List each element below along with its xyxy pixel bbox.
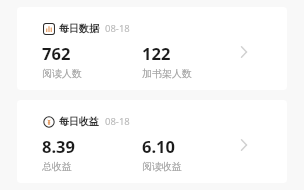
staticText: 阅读人数: [42, 67, 82, 80]
button[interactable]: More: [236, 137, 252, 153]
staticText: 每日数据: [59, 22, 99, 35]
button[interactable]: 每日收益: [17, 100, 287, 183]
staticText: 6.10: [142, 135, 175, 157]
button[interactable]: 每日数据: [17, 7, 287, 90]
staticText: 762: [42, 42, 71, 64]
staticText: 阅读收益: [142, 160, 182, 173]
button[interactable]: More: [236, 44, 252, 60]
staticText: 122: [142, 42, 171, 64]
staticText: 总收益: [42, 160, 72, 173]
staticText: 8.39: [42, 135, 75, 157]
staticText: 每日收益: [59, 115, 99, 128]
staticText: 加书架人数: [142, 67, 192, 80]
staticText: 08-18: [105, 22, 130, 35]
staticText: 08-18: [105, 115, 130, 128]
